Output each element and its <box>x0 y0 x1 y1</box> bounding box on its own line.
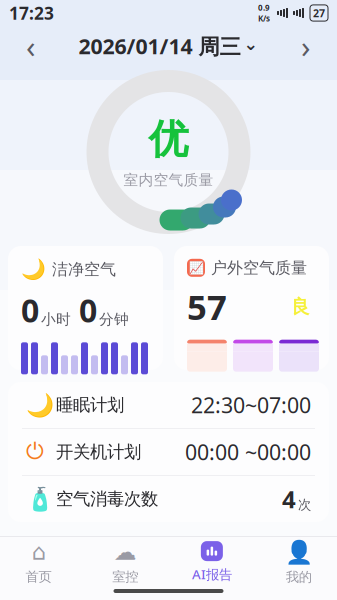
staticText: 📈 <box>188 261 203 275</box>
staticText: 🌙 <box>26 392 54 418</box>
staticText: ‹ <box>26 26 36 66</box>
staticText: ⌂ <box>31 539 45 565</box>
staticText: 4 <box>282 483 296 515</box>
staticText: 17:23 <box>9 1 54 24</box>
staticText: 首页 <box>25 569 51 585</box>
staticText: ⌄ <box>243 34 258 54</box>
button[interactable]: Next day <box>284 28 328 64</box>
button[interactable]: Previous day <box>9 28 53 64</box>
staticText: 0 <box>21 289 39 331</box>
staticText: 57 <box>187 284 227 330</box>
staticText: 0 <box>79 289 97 331</box>
button[interactable]: 📈 <box>174 246 329 370</box>
staticText: 00:00 ~00:00 <box>185 438 311 466</box>
staticText: 次 <box>298 497 311 513</box>
button[interactable]: 2026/01/14 周三 <box>78 28 258 64</box>
staticText: 🧴 <box>26 486 54 512</box>
staticText: 空气消毒次数 <box>56 488 158 510</box>
staticText: 0.9 K/s <box>258 2 270 24</box>
button[interactable]: 🌙 <box>8 382 329 428</box>
button[interactable]: ⏻ <box>8 429 329 475</box>
staticText: ☁ <box>114 539 137 565</box>
staticText: 优 <box>148 115 188 164</box>
staticText: ⏻ <box>26 441 44 463</box>
staticText: 户外空气质量 <box>211 258 307 278</box>
staticText: › <box>301 26 311 66</box>
staticText: 小时 <box>41 310 71 328</box>
staticText: 22:30~07:00 <box>191 391 311 419</box>
staticText: 洁净空气 <box>52 260 116 279</box>
staticText: 室控 <box>112 569 138 585</box>
button[interactable]: 👤 <box>255 537 337 587</box>
staticText: 🌙 <box>21 258 46 281</box>
staticText: 我的 <box>286 569 312 585</box>
button[interactable]: 🧴 <box>8 476 329 522</box>
staticText: 室内空气质量 <box>123 171 213 189</box>
button[interactable]: ☁ <box>82 537 169 587</box>
staticText: 27 <box>313 6 325 20</box>
staticText: 分钟 <box>99 310 129 328</box>
staticText: AI报告 <box>192 565 232 583</box>
button[interactable]: ⌂ <box>0 537 82 587</box>
staticText: 良 <box>291 295 310 318</box>
staticText: 👤 <box>285 539 313 565</box>
button[interactable]: 🌙 <box>8 246 163 370</box>
staticText: 2026/01/14 周三 <box>78 32 240 60</box>
staticText: 开关机计划 <box>56 441 141 463</box>
staticText: 睡眠计划 <box>56 394 124 416</box>
button[interactable]: AI报告 <box>168 537 255 587</box>
